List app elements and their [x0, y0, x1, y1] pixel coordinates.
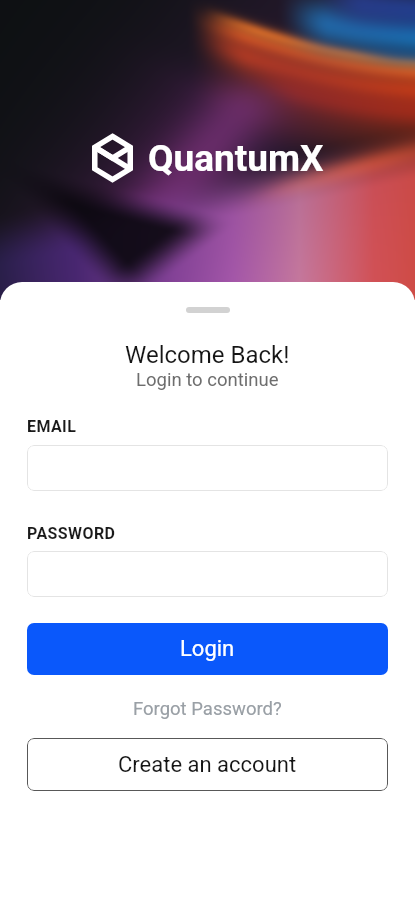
staticText: Create an account	[118, 752, 297, 778]
button[interactable]: Email	[27, 445, 388, 491]
staticText: PASSWORD	[27, 524, 116, 543]
button[interactable]: Password	[27, 551, 388, 597]
staticText: QuantumX	[148, 137, 324, 180]
staticText: EMAIL	[27, 417, 77, 436]
button[interactable]: Forgot Password?	[125, 695, 290, 723]
staticText: Forgot Password?	[133, 698, 282, 720]
button[interactable]: Create an account	[27, 738, 388, 791]
staticText: Login to continue	[136, 369, 279, 391]
button[interactable]: Login	[27, 623, 388, 675]
staticText: Login	[180, 636, 235, 662]
staticText: Welcome Back!	[125, 341, 290, 369]
